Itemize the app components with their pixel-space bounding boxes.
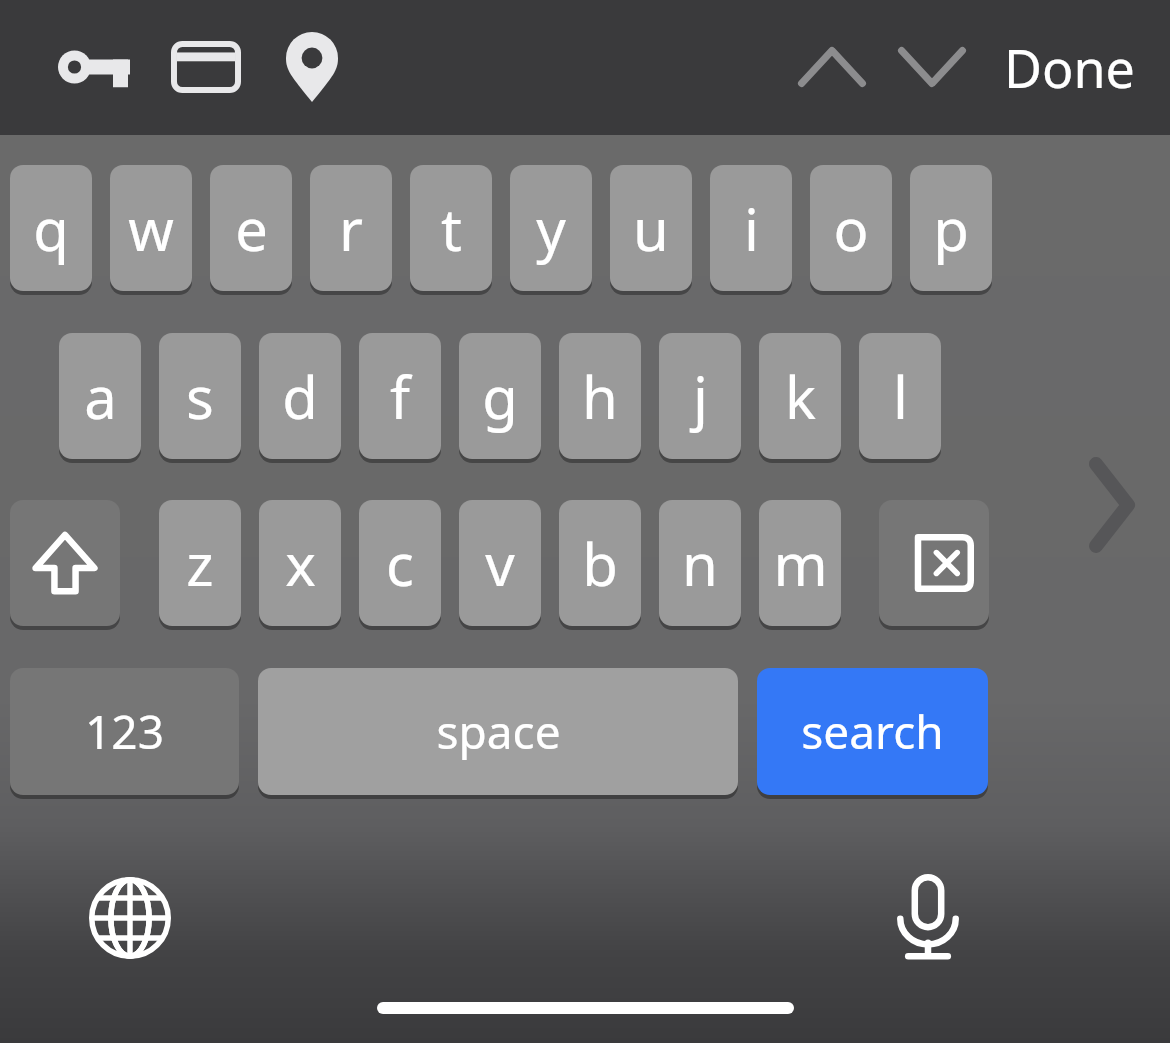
staticText: q bbox=[33, 189, 69, 268]
button[interactable]: Next field bbox=[890, 27, 974, 107]
button[interactable]: Passwords bbox=[48, 27, 140, 107]
staticText: i bbox=[744, 189, 759, 268]
staticText: 123 bbox=[85, 700, 164, 763]
staticText: c bbox=[386, 524, 414, 603]
button[interactable]: l bbox=[859, 333, 941, 459]
staticText: o bbox=[833, 189, 869, 268]
staticText: p bbox=[933, 189, 969, 268]
staticText: z bbox=[186, 524, 214, 603]
staticText: k bbox=[785, 357, 816, 436]
staticText: space bbox=[436, 700, 561, 763]
staticText: s bbox=[186, 357, 214, 436]
staticText: e bbox=[235, 189, 268, 268]
button[interactable]: v bbox=[459, 500, 541, 626]
button[interactable]: x bbox=[259, 500, 341, 626]
staticText: l bbox=[893, 357, 908, 436]
button[interactable]: r bbox=[310, 165, 392, 291]
staticText: f bbox=[390, 357, 410, 436]
staticText: w bbox=[128, 189, 174, 268]
staticText: b bbox=[582, 524, 618, 603]
staticText: Done bbox=[1004, 32, 1135, 103]
button[interactable]: w bbox=[110, 165, 192, 291]
button[interactable]: a bbox=[59, 333, 141, 459]
button[interactable]: Saved cards bbox=[160, 27, 252, 107]
button[interactable]: b bbox=[559, 500, 641, 626]
staticText: d bbox=[282, 357, 318, 436]
button[interactable]: search bbox=[757, 668, 988, 795]
button[interactable]: q bbox=[10, 165, 92, 291]
staticText: n bbox=[682, 524, 718, 603]
staticText: y bbox=[536, 189, 566, 268]
staticText: t bbox=[441, 189, 462, 268]
button[interactable]: i bbox=[710, 165, 792, 291]
button[interactable]: p bbox=[910, 165, 992, 291]
button[interactable]: c bbox=[359, 500, 441, 626]
button[interactable]: g bbox=[459, 333, 541, 459]
button[interactable]: Dictate bbox=[876, 858, 980, 976]
staticText: m bbox=[773, 524, 828, 603]
button[interactable]: s bbox=[159, 333, 241, 459]
button[interactable]: y bbox=[510, 165, 592, 291]
button[interactable]: n bbox=[659, 500, 741, 626]
button[interactable]: More bbox=[1070, 450, 1154, 560]
button[interactable]: m bbox=[759, 500, 841, 626]
button[interactable]: u bbox=[610, 165, 692, 291]
button[interactable]: space bbox=[258, 668, 738, 795]
staticText: r bbox=[339, 189, 363, 268]
staticText: j bbox=[693, 357, 708, 436]
staticText: x bbox=[285, 524, 316, 603]
staticText: a bbox=[84, 357, 117, 436]
button[interactable]: z bbox=[159, 500, 241, 626]
button[interactable]: 123 bbox=[10, 668, 239, 795]
button[interactable]: Location bbox=[268, 25, 356, 109]
button[interactable]: t bbox=[410, 165, 492, 291]
button[interactable]: Done bbox=[996, 22, 1142, 112]
button[interactable]: Backspace bbox=[879, 500, 989, 626]
staticText: search bbox=[801, 700, 944, 763]
staticText: h bbox=[582, 357, 618, 436]
button[interactable]: d bbox=[259, 333, 341, 459]
button[interactable]: f bbox=[359, 333, 441, 459]
button[interactable]: Shift bbox=[10, 500, 120, 626]
button[interactable]: k bbox=[759, 333, 841, 459]
button[interactable]: Previous field bbox=[790, 27, 874, 107]
button[interactable]: o bbox=[810, 165, 892, 291]
button[interactable]: h bbox=[559, 333, 641, 459]
staticText: g bbox=[482, 357, 518, 436]
button[interactable]: j bbox=[659, 333, 741, 459]
staticText: u bbox=[633, 189, 669, 268]
button[interactable]: Next keyboard bbox=[78, 862, 182, 974]
staticText: v bbox=[485, 524, 515, 603]
button[interactable]: e bbox=[210, 165, 292, 291]
